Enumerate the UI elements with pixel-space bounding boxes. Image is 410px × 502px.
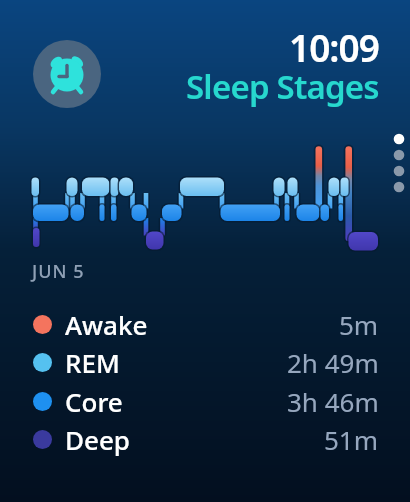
button[interactable]: Core — [33, 382, 379, 420]
staticText: JUN 5 — [32, 259, 85, 284]
staticText: Awake — [65, 307, 148, 342]
button[interactable]: Awake — [33, 305, 379, 343]
staticText: Deep — [65, 422, 130, 457]
staticText: 5m — [339, 307, 379, 342]
button[interactable]: REM — [33, 343, 379, 381]
staticText: 3h 46m — [287, 384, 379, 419]
staticText: 2h 49m — [287, 345, 379, 380]
staticText: Core — [65, 384, 123, 419]
button[interactable]: Deep — [33, 420, 379, 458]
staticText: REM — [65, 345, 120, 380]
button[interactable] — [33, 40, 101, 108]
staticText: Sleep Stages — [186, 64, 379, 109]
staticText: 51m — [324, 422, 379, 457]
staticText: 10:09 — [289, 22, 379, 72]
